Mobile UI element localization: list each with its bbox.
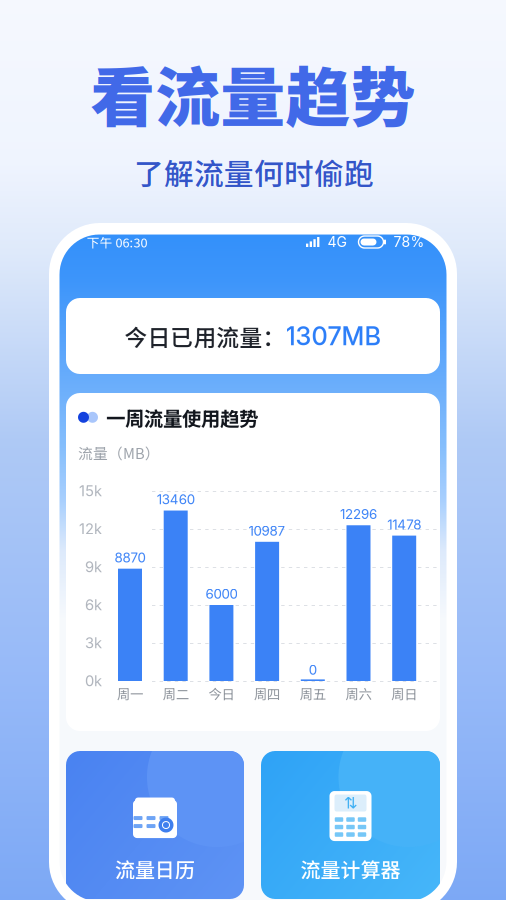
staticText: 周六: [345, 684, 371, 703]
staticText: 流量（MB）: [78, 442, 160, 463]
staticText: 流量日历: [115, 854, 195, 883]
button[interactable]: 流量日历: [66, 751, 244, 899]
staticText: 周日: [391, 684, 417, 703]
staticText: 0k: [85, 672, 102, 690]
staticText: 一周流量使用趋势: [106, 403, 258, 431]
staticText: 6000: [205, 586, 237, 602]
staticText: 12k: [79, 520, 102, 538]
staticText: 4G: [327, 233, 346, 250]
staticText: 1307MB: [285, 321, 381, 351]
button[interactable]: ⇅: [261, 751, 440, 899]
staticText: 今日已用流量：: [124, 320, 285, 352]
staticText: 6k: [85, 596, 102, 614]
staticText: 3k: [85, 634, 102, 652]
staticText: 11478: [387, 516, 421, 533]
staticText: 10987: [249, 523, 286, 539]
staticText: ⇅: [344, 794, 357, 812]
staticText: 13460: [157, 491, 195, 507]
staticText: 周一: [117, 684, 143, 703]
staticText: 周五: [300, 684, 326, 703]
staticText: 了解流量何时偷跑: [134, 150, 374, 194]
staticText: 今日: [208, 684, 234, 703]
staticText: 周四: [254, 684, 280, 703]
staticText: 78%: [393, 233, 424, 250]
staticText: 0: [309, 662, 317, 678]
staticText: 12296: [340, 506, 377, 522]
staticText: 流量计算器: [300, 854, 400, 883]
button[interactable]: 今日已用流量：: [66, 298, 440, 374]
staticText: 下午 06:30: [86, 233, 147, 251]
staticText: 周二: [163, 684, 189, 703]
staticText: 看流量趋势: [90, 46, 415, 140]
staticText: 8870: [114, 550, 145, 566]
staticText: 15k: [79, 482, 102, 500]
staticText: 9k: [85, 558, 102, 576]
